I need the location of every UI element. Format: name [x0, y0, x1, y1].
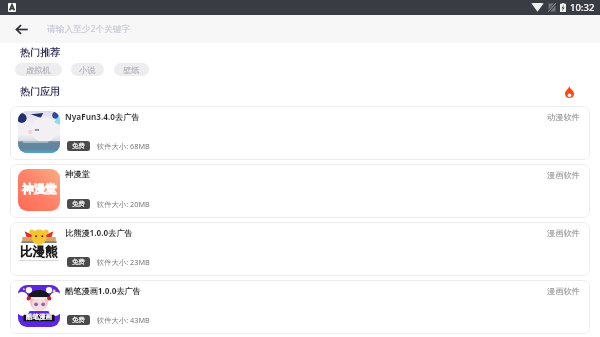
staticText: 比漫熊: [20, 244, 58, 260]
staticText: 免费: [72, 200, 85, 208]
staticText: 漫画软件: [547, 286, 580, 296]
staticText: 神漫堂: [65, 169, 90, 179]
staticText: 酷笔漫画1.0.0去广告: [65, 285, 141, 296]
button[interactable]: 壁纸: [114, 63, 149, 76]
staticText: 请输入至少2个关键字: [47, 23, 131, 35]
button[interactable]: 虚拟机: [15, 63, 62, 76]
staticText: 软件大小: 68MB: [97, 141, 150, 151]
staticText: 免费: [72, 258, 85, 266]
staticText: 热门应用: [20, 85, 60, 98]
button[interactable]: 比漫熊: [10, 222, 590, 276]
button[interactable]: 酷笔漫画: [10, 280, 590, 334]
staticText: 热门推荐: [20, 46, 60, 59]
button[interactable]: 神漫堂: [10, 164, 590, 218]
staticText: 10:32: [570, 1, 595, 14]
staticText: 壁纸: [123, 65, 140, 75]
staticText: 酷笔漫画: [26, 313, 52, 321]
button[interactable]: 请输入至少2个关键字: [30, 15, 600, 43]
staticText: 神漫堂: [22, 182, 57, 196]
staticText: 漫画软件: [547, 170, 580, 180]
staticText: 免费: [72, 142, 85, 150]
staticText: 软件大小: 20MB: [97, 199, 150, 209]
staticText: NyaFun3.4.0去广告: [65, 111, 140, 122]
staticText: 虚拟机: [26, 65, 51, 75]
button[interactable]: Back: [0, 15, 44, 43]
staticText: 小说: [79, 65, 96, 75]
staticText: 漫画软件: [547, 228, 580, 238]
staticText: 软件大小: 43MB: [97, 315, 150, 325]
staticText: 动漫软件: [547, 112, 580, 122]
button[interactable]: 小说: [71, 63, 104, 76]
staticText: 免费: [72, 316, 85, 324]
button[interactable]: NyaFun3.4.0去广告: [10, 106, 590, 160]
button[interactable]: Hot: [565, 86, 574, 98]
staticText: 软件大小: 23MB: [97, 257, 150, 267]
staticText: 比熊漫1.0.0去广告: [65, 227, 133, 238]
